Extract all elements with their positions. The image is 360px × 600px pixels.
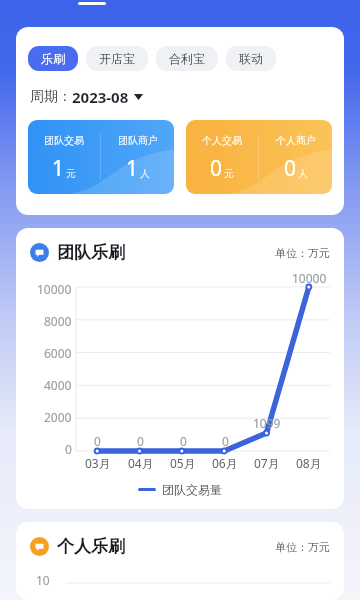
staticText: 8000: [44, 313, 72, 329]
button[interactable]: 开店宝: [86, 46, 148, 71]
button[interactable]: 合利宝: [156, 46, 218, 71]
staticText: 单位：万元: [275, 246, 330, 260]
staticText: 1: [52, 154, 65, 183]
staticText: 乐刷: [41, 51, 65, 66]
staticText: 4000: [44, 377, 72, 393]
staticText: 元: [66, 167, 76, 180]
staticText: 0: [180, 433, 187, 449]
staticText: 03月: [85, 455, 111, 471]
staticText: 开店宝: [99, 51, 135, 66]
staticText: 人: [140, 167, 150, 180]
staticText: 0: [210, 154, 223, 183]
button[interactable]: 团队交易: [28, 120, 174, 194]
staticText: 6000: [44, 345, 72, 361]
staticText: 人: [298, 167, 308, 180]
staticText: 10000: [292, 270, 327, 286]
staticText: 合利宝: [169, 51, 205, 66]
button[interactable]: 联动: [226, 46, 276, 71]
staticText: 团队商户: [118, 134, 158, 147]
staticText: 周期：: [30, 88, 72, 106]
staticText: 个人商户: [276, 134, 316, 147]
button[interactable]: 乐刷: [28, 46, 78, 71]
staticText: 团队交易: [44, 134, 84, 147]
staticText: 单位：万元: [275, 540, 330, 554]
staticText: 1: [126, 154, 139, 183]
staticText: 2000: [44, 409, 72, 425]
staticText: 0: [137, 433, 144, 449]
staticText: 团队乐刷: [57, 242, 125, 263]
staticText: 团队交易量: [162, 482, 222, 497]
staticText: 1099: [253, 415, 281, 431]
staticText: 10: [36, 572, 50, 588]
button[interactable]: 个人交易: [186, 120, 332, 194]
other: 统计图标: [30, 243, 49, 262]
staticText: 2023-08: [72, 87, 129, 107]
staticText: 0: [284, 154, 297, 183]
other: 统计图标: [30, 537, 49, 556]
button[interactable]: 周期：: [30, 87, 143, 107]
staticText: 10000: [37, 281, 72, 297]
staticText: 元: [224, 167, 234, 180]
staticText: 08月: [296, 455, 322, 471]
staticText: 05月: [170, 455, 196, 471]
staticText: 0: [94, 433, 101, 449]
staticText: 个人交易: [202, 134, 242, 147]
staticText: 个人乐刷: [57, 536, 125, 557]
staticText: 0: [65, 441, 72, 457]
staticText: 07月: [254, 455, 280, 471]
staticText: 0: [222, 433, 229, 449]
staticText: 04月: [128, 455, 154, 471]
staticText: 06月: [212, 455, 238, 471]
staticText: 联动: [239, 51, 263, 66]
